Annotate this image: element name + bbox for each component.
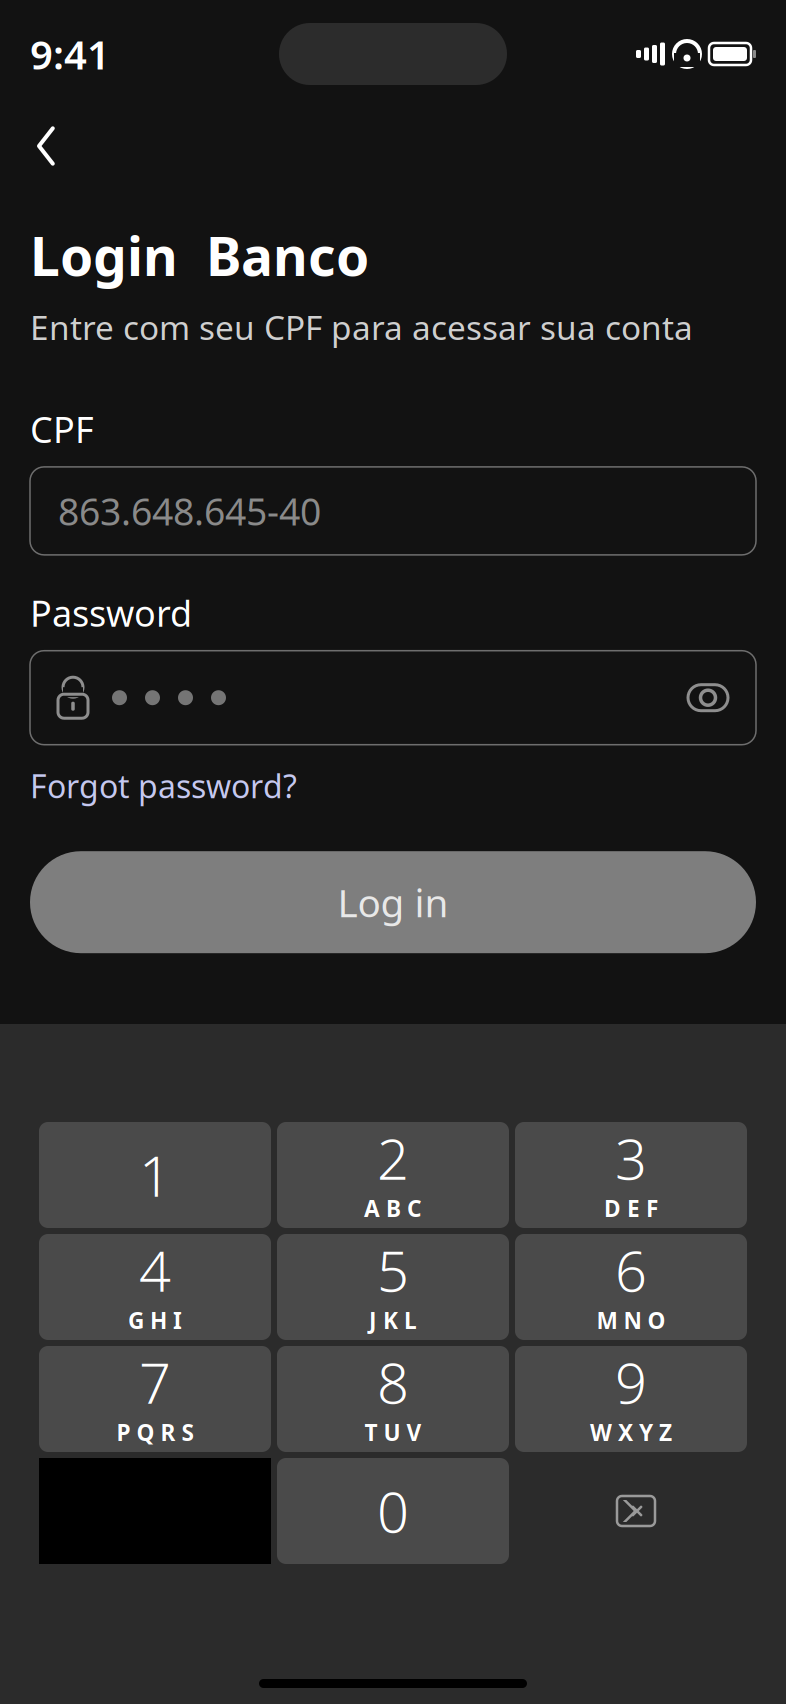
button[interactable]: 9 [515, 1346, 747, 1452]
staticText: Login Banco [30, 220, 369, 291]
staticText: 9 [615, 1345, 647, 1419]
staticText: 6 [615, 1233, 647, 1307]
button[interactable]: Back [16, 116, 76, 176]
staticText: M N O [596, 1305, 665, 1335]
button[interactable]: 3 [515, 1122, 747, 1228]
staticText: 4 [139, 1233, 171, 1307]
staticText: T U V [364, 1417, 421, 1447]
button[interactable]: 2 [277, 1122, 509, 1228]
button[interactable]: 4 [39, 1234, 271, 1340]
button[interactable]: 6 [515, 1234, 747, 1340]
staticText: 9:41 [30, 27, 110, 80]
staticText: 1 [139, 1138, 171, 1212]
staticText: 863.648.645-40 [58, 486, 321, 536]
staticText: P Q R S [116, 1417, 193, 1447]
button[interactable]: 8 [277, 1346, 509, 1452]
staticText: Forgot password? [30, 765, 297, 807]
button[interactable]: Delete [515, 1458, 747, 1564]
staticText: Log in [337, 876, 448, 928]
button[interactable]: 1 [39, 1122, 271, 1228]
staticText: Entre com seu CPF para acessar sua conta [30, 305, 693, 349]
button[interactable] [30, 651, 756, 745]
button[interactable]: 0 [277, 1458, 509, 1564]
staticText: 2 [377, 1121, 409, 1195]
button[interactable]: Forgot password? [30, 765, 297, 807]
button[interactable]: Log in [30, 851, 756, 953]
staticText: Password [30, 589, 192, 637]
button[interactable]: 5 [277, 1234, 509, 1340]
button[interactable]: 7 [39, 1346, 271, 1452]
staticText: W X Y Z [590, 1417, 672, 1447]
staticText: A B C [364, 1193, 422, 1223]
staticText: CPF [30, 405, 94, 453]
staticText: J K L [369, 1305, 417, 1335]
staticText: 8 [377, 1345, 409, 1419]
staticText: 7 [139, 1345, 171, 1419]
staticText: G H I [128, 1305, 182, 1335]
staticText: D E F [604, 1193, 658, 1223]
staticText: 0 [377, 1474, 409, 1548]
button[interactable]: 863.648.645-40 [30, 467, 756, 555]
staticText: 5 [377, 1233, 409, 1307]
staticText: 3 [615, 1121, 647, 1195]
